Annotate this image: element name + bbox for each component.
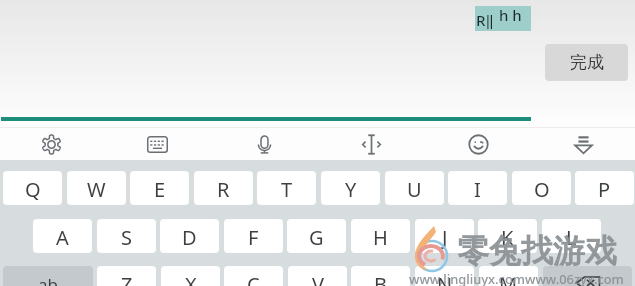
button[interactable]: B: [351, 266, 410, 286]
staticText: Y: [345, 176, 357, 203]
button[interactable]: R: [194, 171, 253, 205]
button[interactable]: M: [479, 266, 538, 286]
staticText: I: [474, 176, 481, 203]
button[interactable]: I: [448, 171, 507, 205]
button[interactable]: X: [161, 266, 220, 286]
button[interactable]: Voice input: [238, 121, 290, 160]
button[interactable]: Hide keyboard: [557, 121, 609, 160]
button[interactable]: Emoji: [452, 121, 504, 160]
staticText: Z: [121, 271, 133, 286]
staticText: A: [56, 224, 69, 251]
staticText: R‖: [476, 10, 494, 30]
button[interactable]: J: [415, 219, 474, 253]
staticText: D: [182, 224, 197, 251]
staticText: R: [217, 176, 230, 203]
staticText: Q: [25, 176, 41, 203]
button[interactable]: H: [351, 219, 410, 253]
button[interactable]: P: [575, 171, 634, 205]
button[interactable]: Z: [97, 266, 156, 286]
staticText: www.06zyx.com: [525, 270, 624, 286]
button[interactable]: 完成: [545, 44, 628, 81]
staticText: L: [566, 224, 577, 251]
button[interactable]: K: [478, 219, 537, 253]
staticText: V: [312, 271, 324, 286]
staticText: H: [373, 224, 388, 251]
staticText: X: [185, 271, 197, 286]
button[interactable]: L: [542, 219, 601, 253]
button[interactable]: Q: [3, 171, 62, 205]
staticText: 完成: [570, 52, 604, 73]
staticText: J: [442, 224, 448, 251]
staticText: S: [121, 224, 132, 251]
button[interactable]: V: [288, 266, 347, 286]
staticText: K: [501, 224, 514, 251]
button[interactable]: C: [224, 266, 283, 286]
staticText: C: [247, 271, 260, 286]
button[interactable]: Y: [321, 171, 380, 205]
button[interactable]: R‖: [475, 6, 531, 31]
button[interactable]: Keyboard layout: [131, 121, 183, 160]
staticText: T: [281, 176, 293, 203]
staticText: E: [154, 176, 166, 203]
staticText: O: [534, 176, 550, 203]
button[interactable]: W: [67, 171, 126, 205]
button[interactable]: Backspace: [543, 266, 632, 286]
button[interactable]: D: [160, 219, 219, 253]
button[interactable]: U: [385, 171, 444, 205]
staticText: F: [248, 224, 259, 251]
staticText: G: [309, 224, 324, 251]
staticText: B: [374, 271, 387, 286]
button[interactable]: T: [257, 171, 316, 205]
button[interactable]: A: [33, 219, 92, 253]
staticText: U: [407, 176, 422, 203]
button[interactable]: Settings: [25, 121, 77, 160]
staticText: h h: [499, 5, 522, 25]
button[interactable]: G: [287, 219, 346, 253]
button[interactable]: F: [224, 219, 283, 253]
staticText: 零兔找游戏: [457, 231, 617, 271]
button[interactable]: O: [512, 171, 571, 205]
staticText: ab: [38, 273, 58, 286]
staticText: M: [499, 271, 518, 286]
staticText: www.lingliuyx.com: [409, 270, 526, 286]
button[interactable]: Shift: [3, 266, 93, 286]
button[interactable]: Move cursor: [345, 121, 397, 160]
button[interactable]: S: [97, 219, 156, 253]
button[interactable]: N: [415, 266, 474, 286]
button[interactable]: E: [130, 171, 189, 205]
staticText: W: [87, 176, 106, 203]
staticText: N: [437, 271, 453, 286]
staticText: P: [598, 176, 611, 203]
